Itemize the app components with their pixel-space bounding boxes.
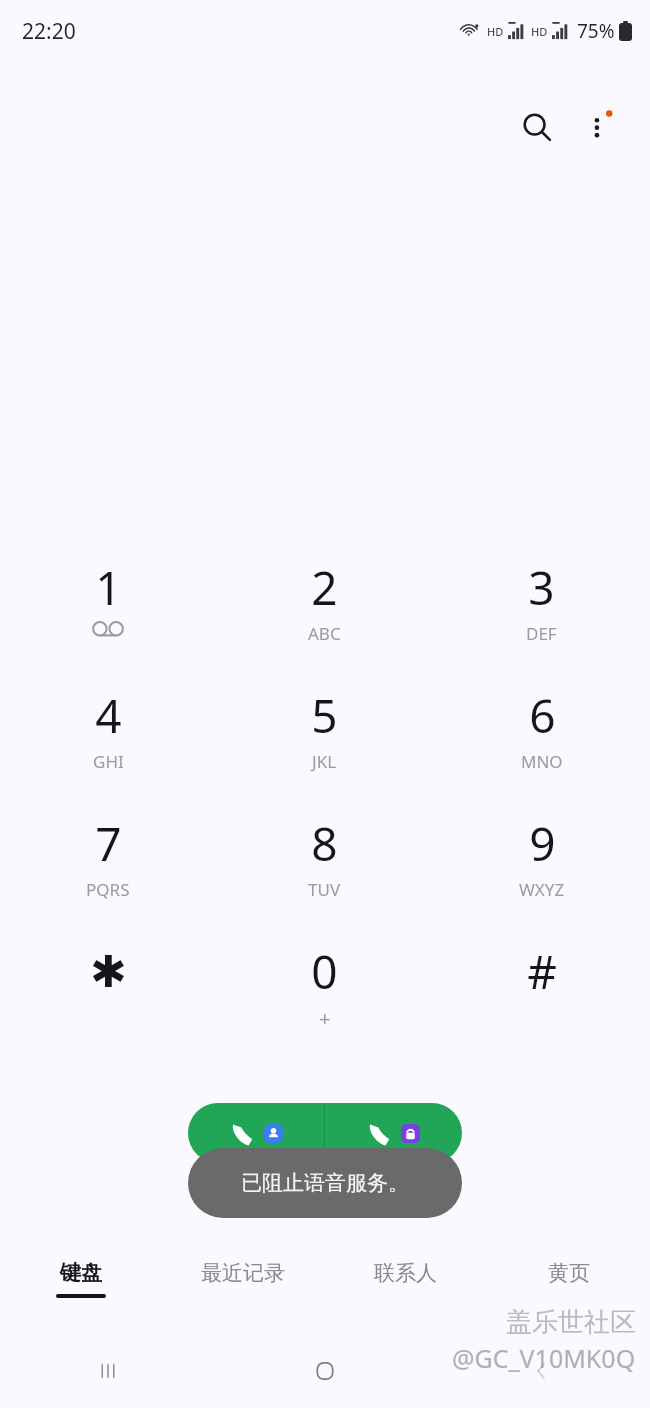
staticText: 4	[95, 684, 122, 747]
staticText: 2	[311, 556, 338, 619]
button[interactable]: 1	[0, 548, 216, 676]
staticText: 8	[311, 812, 338, 875]
button[interactable]: 9	[433, 804, 650, 932]
button[interactable]: Call with work profile	[325, 1103, 462, 1163]
staticText: 已阻止语音服务。	[241, 1170, 409, 1196]
staticText: 75%	[577, 18, 615, 44]
staticText: 9	[529, 812, 556, 875]
staticText: 最近记录	[201, 1260, 285, 1286]
button[interactable]: #	[433, 932, 650, 1060]
button[interactable]: Search	[506, 96, 568, 158]
button[interactable]: ✱	[0, 932, 216, 1060]
staticText: WXYZ	[519, 878, 565, 901]
staticText: @GC_V10MK0Q	[452, 1341, 636, 1375]
button[interactable]: 最近记录	[162, 1248, 324, 1318]
staticText: ABC	[308, 622, 341, 645]
button[interactable]: 键盘	[0, 1248, 162, 1318]
staticText: 6	[529, 684, 556, 747]
staticText: 键盘	[60, 1260, 102, 1286]
staticText: +	[319, 1005, 331, 1032]
button[interactable]: 联系人	[324, 1248, 487, 1318]
button[interactable]: 黄页	[487, 1248, 650, 1318]
staticText: 1	[95, 556, 122, 619]
button[interactable]: 4	[0, 676, 216, 804]
button[interactable]: Back	[433, 1334, 650, 1408]
button[interactable]: 0	[216, 932, 433, 1060]
button[interactable]: 7	[0, 804, 216, 932]
button[interactable]: More options	[568, 96, 630, 158]
staticText: TUV	[308, 878, 341, 901]
staticText: 黄页	[548, 1260, 590, 1286]
staticText: GHI	[93, 750, 124, 773]
staticText: 7	[95, 812, 122, 875]
staticText: 3	[528, 556, 555, 619]
staticText: HD	[531, 24, 548, 39]
staticText: MNO	[521, 750, 563, 773]
staticText: JKL	[312, 750, 337, 773]
button[interactable]: 6	[433, 676, 650, 804]
button[interactable]: 8	[216, 804, 433, 932]
button[interactable]: 2	[216, 548, 433, 676]
button[interactable]: 3	[433, 548, 650, 676]
button[interactable]: Call	[188, 1103, 324, 1163]
staticText: 5	[311, 684, 338, 747]
staticText: #	[527, 940, 557, 1003]
staticText: DEF	[526, 622, 557, 645]
staticText: HD	[487, 24, 504, 39]
staticText: PQRS	[86, 878, 130, 901]
button[interactable]: 5	[216, 676, 433, 804]
staticText: 0	[311, 940, 338, 1003]
staticText: 联系人	[374, 1260, 437, 1286]
staticText: ✱	[90, 946, 127, 997]
staticText: 盖乐世社区	[506, 1306, 636, 1339]
staticText: 22:20	[22, 17, 76, 46]
button[interactable]: Recent apps	[0, 1334, 216, 1408]
button[interactable]: Home	[216, 1334, 433, 1408]
